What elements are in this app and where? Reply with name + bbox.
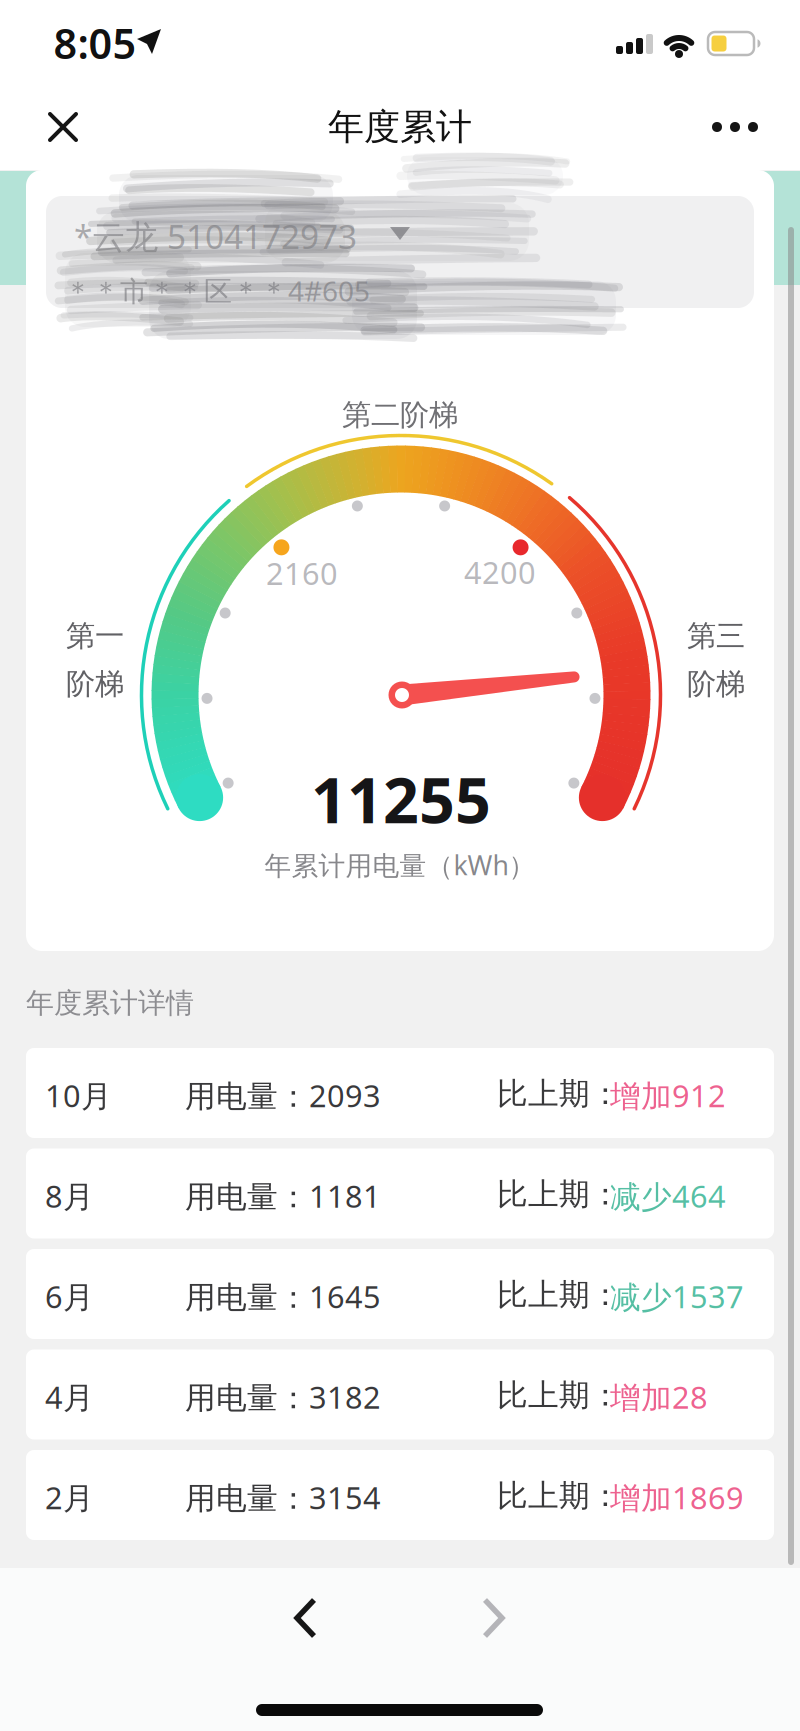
staticText: *云龙 5104172973 — [74, 214, 357, 258]
staticText: 第三 — [687, 618, 745, 654]
staticText: 用电量：3182 — [185, 1376, 381, 1417]
staticText: 4200 — [464, 552, 536, 592]
staticText: 增加912 — [610, 1075, 726, 1116]
staticText: 8月 — [45, 1175, 94, 1216]
staticText: 第一 — [66, 618, 124, 654]
staticText: 比上期： — [497, 1075, 621, 1113]
staticText: 用电量：3154 — [185, 1477, 381, 1518]
button[interactable] — [274, 1596, 334, 1640]
staticText: 年度累计 — [328, 105, 472, 149]
staticText: 年度累计详情 — [26, 986, 194, 1020]
staticText: 8:05 — [53, 16, 136, 70]
staticText: 用电量：2093 — [185, 1075, 381, 1116]
staticText: 增加28 — [610, 1376, 708, 1417]
staticText: 比上期： — [497, 1477, 621, 1515]
staticText: 比上期： — [497, 1376, 621, 1414]
staticText: 6月 — [45, 1276, 94, 1317]
staticText: 用电量：1645 — [185, 1276, 381, 1317]
staticText: 阶梯 — [66, 666, 124, 702]
button[interactable]: 6月 — [26, 1249, 774, 1339]
button[interactable] — [46, 196, 754, 308]
staticText: 比上期： — [497, 1276, 621, 1314]
staticText: ＊＊市＊＊区＊＊4#605 — [64, 272, 370, 309]
staticText: 减少1537 — [610, 1276, 744, 1317]
staticText: 10月 — [45, 1075, 112, 1116]
staticText: 阶梯 — [687, 666, 745, 702]
staticText: 比上期： — [497, 1175, 621, 1213]
staticText: 减少464 — [610, 1175, 726, 1216]
button[interactable] — [37, 101, 89, 153]
button[interactable]: 2月 — [26, 1450, 774, 1540]
staticText: 第二阶梯 — [342, 397, 458, 433]
staticText: 年累计用电量（kWh） — [264, 847, 535, 883]
staticText: 11255 — [311, 757, 491, 841]
button[interactable]: 10月 — [26, 1048, 774, 1138]
staticText: 增加1869 — [610, 1477, 744, 1518]
button[interactable] — [705, 105, 765, 149]
button[interactable]: 8月 — [26, 1148, 774, 1238]
staticText: 4月 — [45, 1376, 94, 1417]
staticText: 2月 — [45, 1477, 94, 1518]
staticText: 用电量：1181 — [185, 1175, 381, 1216]
button[interactable]: 4月 — [26, 1349, 774, 1439]
staticText: 2160 — [266, 553, 338, 593]
button[interactable] — [465, 1596, 525, 1640]
